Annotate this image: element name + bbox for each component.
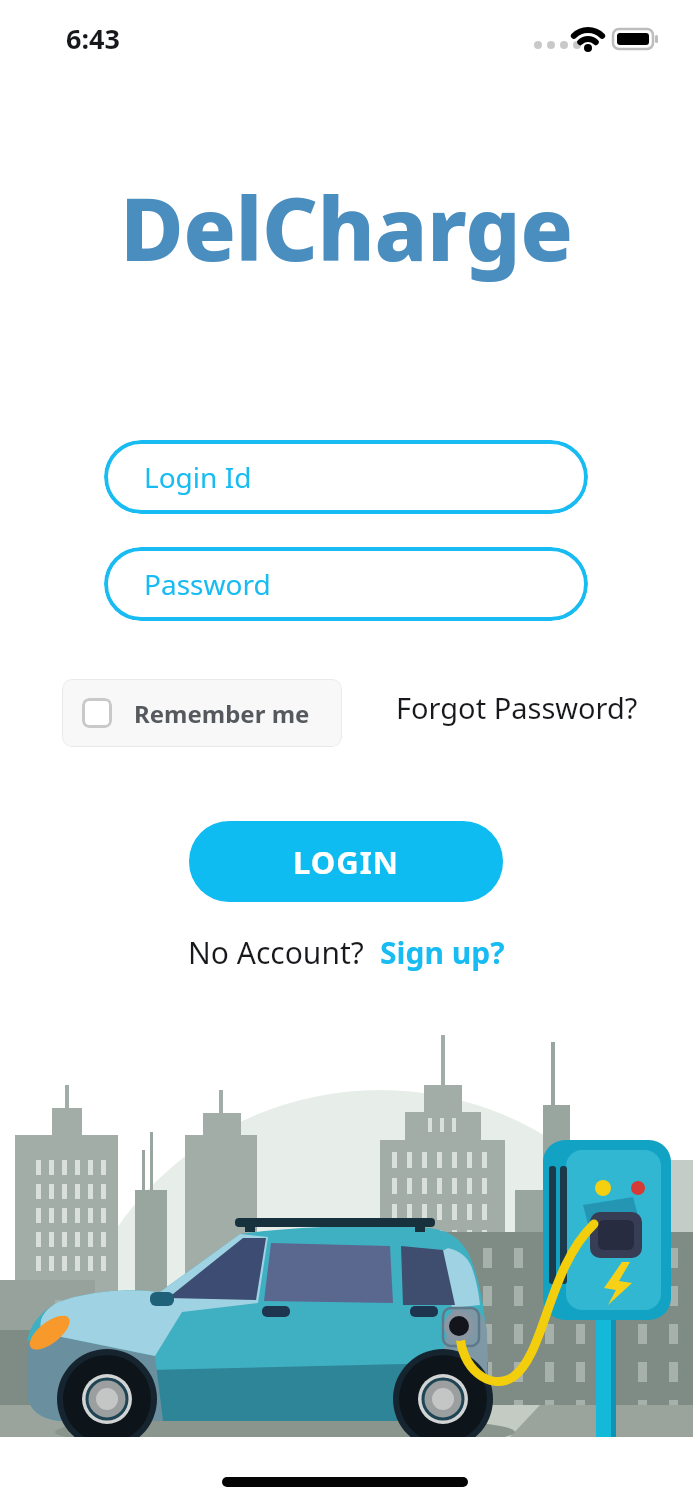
button[interactable]: Forgot Password? bbox=[396, 688, 638, 727]
button[interactable]: Login Id bbox=[104, 440, 588, 514]
staticText: DelCharge bbox=[120, 168, 573, 286]
staticText: Login Id bbox=[144, 458, 252, 496]
staticText: No Account? bbox=[188, 932, 380, 973]
staticText: 6:43 bbox=[66, 20, 120, 57]
button[interactable]: Remember me bbox=[62, 679, 342, 747]
button[interactable]: Sign up? bbox=[380, 932, 505, 973]
button[interactable]: Password bbox=[104, 547, 588, 621]
staticText: LOGIN bbox=[293, 841, 399, 883]
button[interactable]: LOGIN bbox=[189, 821, 503, 902]
staticText: Password bbox=[144, 565, 271, 603]
staticText: Forgot Password? bbox=[396, 688, 638, 727]
staticText: Sign up? bbox=[380, 932, 505, 973]
staticText: Remember me bbox=[134, 697, 310, 730]
